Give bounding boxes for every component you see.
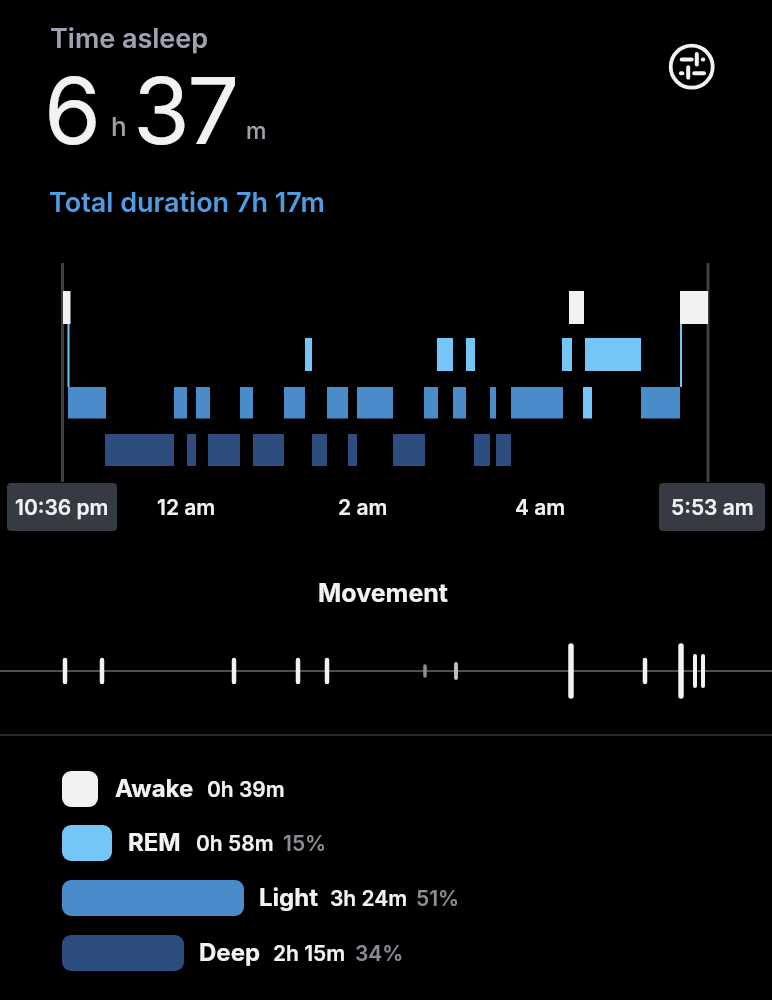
staticText: Light [259,883,318,912]
staticText: 4 am [515,495,566,520]
staticText: 12 am [157,495,216,520]
staticText: 6 [44,55,102,166]
staticText: Time asleep [50,22,209,55]
staticText: h [111,111,127,142]
staticText: 5:53 am [671,495,754,520]
button[interactable]: 10:36 pm [7,483,117,531]
button[interactable]: Deep [0,935,772,975]
staticText: 0h 58m [196,831,274,856]
staticText: 2h 15m [273,941,346,966]
staticText: m [246,117,267,145]
staticText: 2 am [338,495,388,520]
staticText: 51% [416,886,460,911]
staticText: 0h 39m [207,777,285,802]
staticText: Total duration 7h 17m [49,186,325,219]
staticText: Deep [199,938,261,967]
staticText: 10:36 pm [15,495,109,520]
staticText: 3h 24m [330,886,408,911]
button[interactable] [668,43,716,91]
staticText: 37 [133,55,237,166]
button[interactable]: Light [0,880,772,920]
button[interactable]: 5:53 am [659,483,765,531]
staticText: Movement [318,578,449,608]
staticText: 15% [283,831,327,856]
button[interactable]: REM [0,825,772,865]
staticText: REM [128,828,181,857]
staticText: 34% [355,941,404,966]
staticText: Awake [115,774,194,803]
button[interactable]: Awake [0,771,772,811]
